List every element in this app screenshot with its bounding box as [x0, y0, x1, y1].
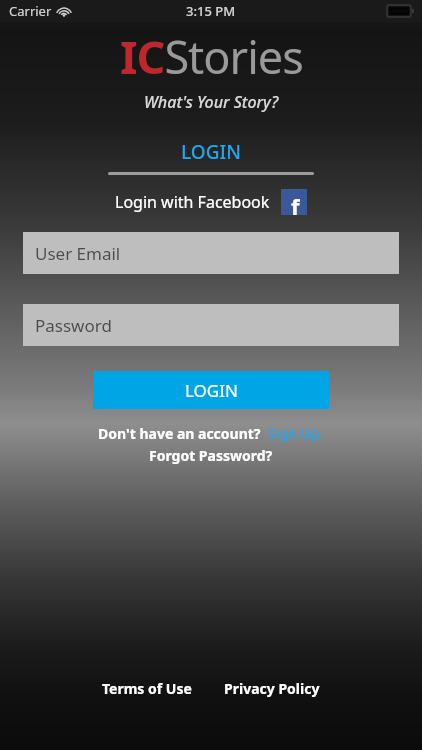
staticText: LOGIN	[181, 139, 241, 165]
button[interactable]: Login with Facebook	[115, 189, 307, 215]
staticText: f	[291, 191, 300, 217]
button[interactable]: LOGIN	[93, 371, 329, 409]
button[interactable]: Password	[23, 304, 399, 346]
button[interactable]: Terms of Use	[102, 679, 192, 698]
staticText: ICStories	[120, 26, 303, 87]
staticText: 3:15 PM	[186, 2, 236, 20]
staticText: Login with Facebook	[115, 191, 270, 213]
button[interactable]: Login with Facebook	[281, 189, 307, 215]
button[interactable]: LOGIN	[108, 139, 314, 175]
staticText: User Email	[35, 242, 121, 265]
staticText: Carrier	[9, 2, 52, 20]
button[interactable]: Don't have an account?	[98, 424, 261, 443]
staticText: LOGIN	[185, 379, 238, 402]
button[interactable]: Privacy Policy	[224, 679, 320, 698]
button[interactable]: User Email	[23, 232, 399, 274]
button[interactable]: Sign Up.	[268, 424, 324, 443]
staticText: Password	[35, 314, 112, 337]
staticText: What's Your Story?	[144, 91, 279, 113]
button[interactable]: Forgot Password?	[149, 446, 273, 465]
